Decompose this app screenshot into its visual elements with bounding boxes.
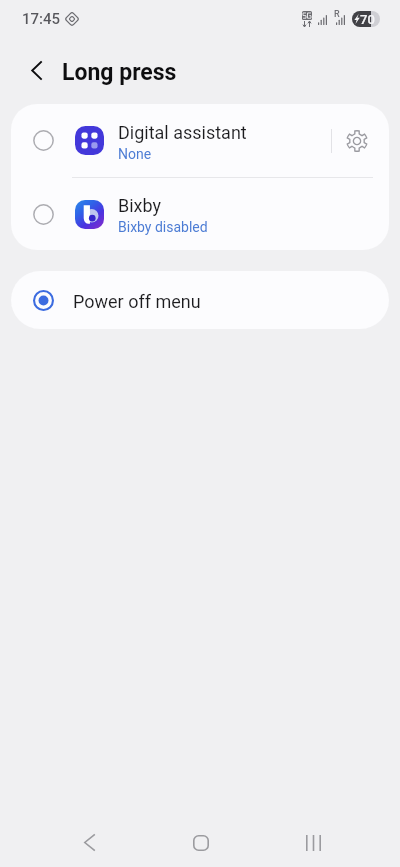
button[interactable]: Digital assistant settings (332, 111, 382, 171)
staticText: 70 (360, 12, 375, 27)
button[interactable]: Bixby (11, 178, 389, 250)
staticText: Digital assistant (118, 122, 247, 143)
staticText: Power off menu (73, 291, 201, 312)
button[interactable]: Digital assistant (11, 104, 389, 177)
staticText: None (118, 146, 152, 162)
button[interactable]: Back (58, 818, 114, 867)
staticText: Long press (62, 59, 177, 86)
staticText: 17:45 (22, 10, 61, 28)
staticText: Bixby (118, 195, 162, 216)
button[interactable]: Home (172, 818, 228, 867)
button[interactable]: Navigate up (0, 47, 62, 97)
staticText: Bixby disabled (118, 219, 208, 235)
staticText: R (334, 9, 340, 20)
button[interactable]: Recent apps (286, 818, 342, 867)
button[interactable]: Power off menu (11, 271, 389, 329)
